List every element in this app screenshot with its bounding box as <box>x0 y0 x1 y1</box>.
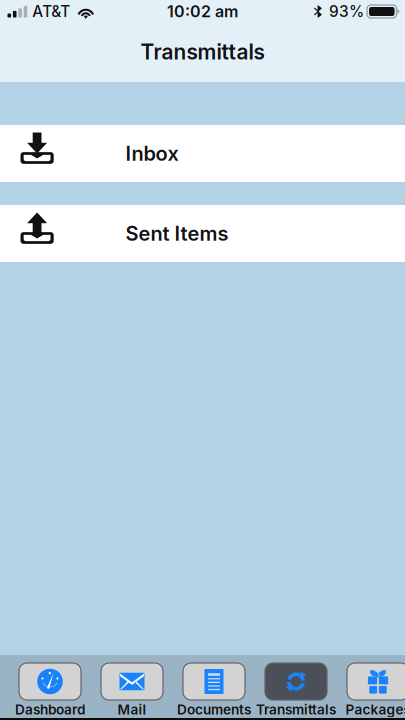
staticText: Mail <box>117 701 146 718</box>
button[interactable]: Mail <box>91 655 173 718</box>
button[interactable]: Documents <box>173 655 255 718</box>
staticText: AT&T <box>32 2 70 21</box>
staticText: Sent Items <box>125 221 228 246</box>
staticText: Transmittals <box>140 39 264 65</box>
staticText: Packages <box>345 701 405 718</box>
staticText: 93% <box>329 2 364 21</box>
staticText: Inbox <box>125 141 178 166</box>
staticText: Transmittals <box>256 701 336 718</box>
button[interactable]: Transmittals <box>255 655 337 718</box>
button[interactable]: Sent Items <box>0 205 405 262</box>
staticText: 10:02 am <box>167 2 238 21</box>
staticText: Documents <box>177 701 251 718</box>
staticText: Dashboard <box>15 701 85 718</box>
button[interactable]: Inbox <box>0 125 405 182</box>
button[interactable]: Dashboard <box>9 655 91 718</box>
button[interactable]: Packages <box>337 655 405 718</box>
